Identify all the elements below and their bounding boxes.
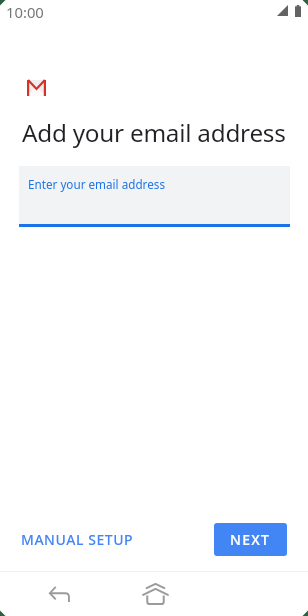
button[interactable]: NEXT <box>214 523 287 556</box>
staticText: 10:00 <box>6 2 44 22</box>
button[interactable]: Enter your email address <box>19 166 290 224</box>
button[interactable]: Back <box>41 576 77 612</box>
button[interactable]: MANUAL SETUP <box>13 525 142 554</box>
staticText: Enter your email address <box>28 176 165 192</box>
staticText: Add your email address <box>22 116 286 149</box>
staticText: NEXT <box>230 530 271 549</box>
button[interactable]: Home <box>137 576 173 612</box>
staticText: MANUAL SETUP <box>21 530 134 549</box>
